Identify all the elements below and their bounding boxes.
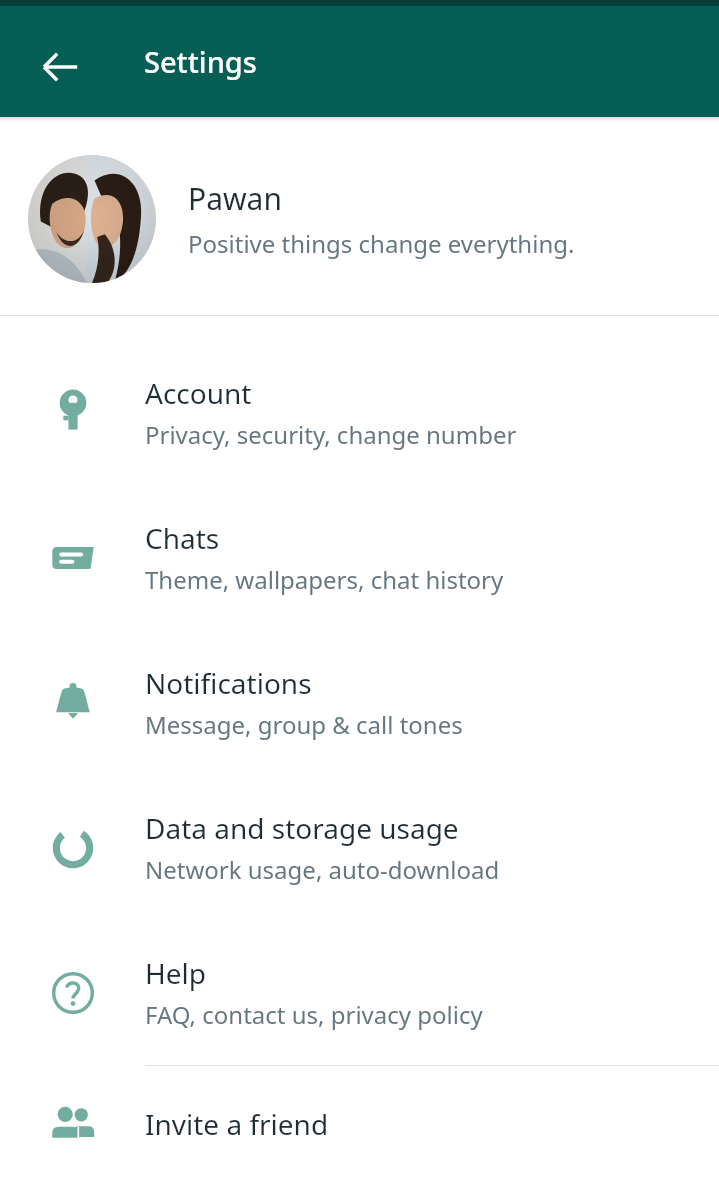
staticText: Network usage, auto-download [145, 853, 500, 886]
staticText: Privacy, security, change number [145, 418, 517, 451]
button[interactable]: Invite a friend [0, 1066, 719, 1181]
staticText: Invite a friend [145, 1105, 329, 1143]
staticText: Notifications [145, 664, 312, 702]
staticText: Chats [145, 519, 220, 557]
button[interactable]: Data and storage usage [0, 775, 719, 920]
staticText: Positive things change everything. [188, 227, 575, 260]
staticText: FAQ, contact us, privacy policy [145, 998, 483, 1031]
staticText: Help [145, 954, 206, 992]
staticText: Pawan [188, 178, 282, 219]
button[interactable]: Back [24, 31, 96, 103]
staticText: Data and storage usage [145, 809, 459, 847]
staticText: Theme, wallpapers, chat history [145, 563, 504, 596]
staticText: Account [145, 374, 252, 412]
staticText: Message, group & call tones [145, 708, 463, 741]
button[interactable]: Notifications [0, 630, 719, 775]
button[interactable]: Help [0, 920, 719, 1065]
button[interactable]: Pawan [0, 122, 719, 315]
button[interactable]: Account [0, 340, 719, 485]
staticText: Settings [144, 42, 257, 81]
button[interactable]: Chats [0, 485, 719, 630]
